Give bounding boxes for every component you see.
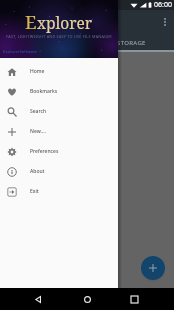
staticText: ExplorerSoftware [3, 49, 37, 55]
button[interactable]: Preferences [0, 141, 118, 161]
staticText: Search [30, 108, 47, 115]
staticText: Home [30, 68, 45, 75]
staticText: FAST, LIGHTWEIGHT AND EASY TO USE FILE M… [0, 34, 118, 39]
staticText: Preferences [30, 148, 59, 155]
staticText: Bookmarks [30, 88, 58, 95]
staticText: 06:00 [154, 0, 172, 10]
button[interactable]: Exit [0, 181, 118, 201]
button[interactable]: Home [0, 61, 118, 81]
button[interactable]: New.... [0, 121, 118, 141]
staticText: xplorer [37, 12, 93, 33]
staticText: New.... [30, 128, 46, 135]
staticText: STORAGE [117, 39, 146, 47]
button[interactable]: More options [157, 14, 173, 30]
staticText: E [25, 9, 37, 34]
button[interactable]: Recents [123, 288, 145, 310]
button[interactable]: About [0, 161, 118, 181]
button[interactable]: Add [141, 256, 165, 280]
staticText: About [30, 168, 45, 175]
button[interactable]: Bookmarks [0, 81, 118, 101]
button[interactable]: Back [27, 288, 49, 310]
staticText: Exit [30, 188, 39, 195]
button[interactable]: Home [76, 288, 98, 310]
button[interactable]: Search [0, 101, 118, 121]
